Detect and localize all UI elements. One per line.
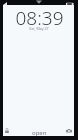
button[interactable]: open: [29, 128, 50, 138]
button[interactable]: Unlock: [2, 126, 12, 136]
staticText: 08:39: [15, 5, 64, 31]
staticText: Sat, May 27: [29, 26, 49, 31]
staticText: open: [32, 129, 47, 137]
button[interactable]: Camera: [64, 126, 74, 136]
